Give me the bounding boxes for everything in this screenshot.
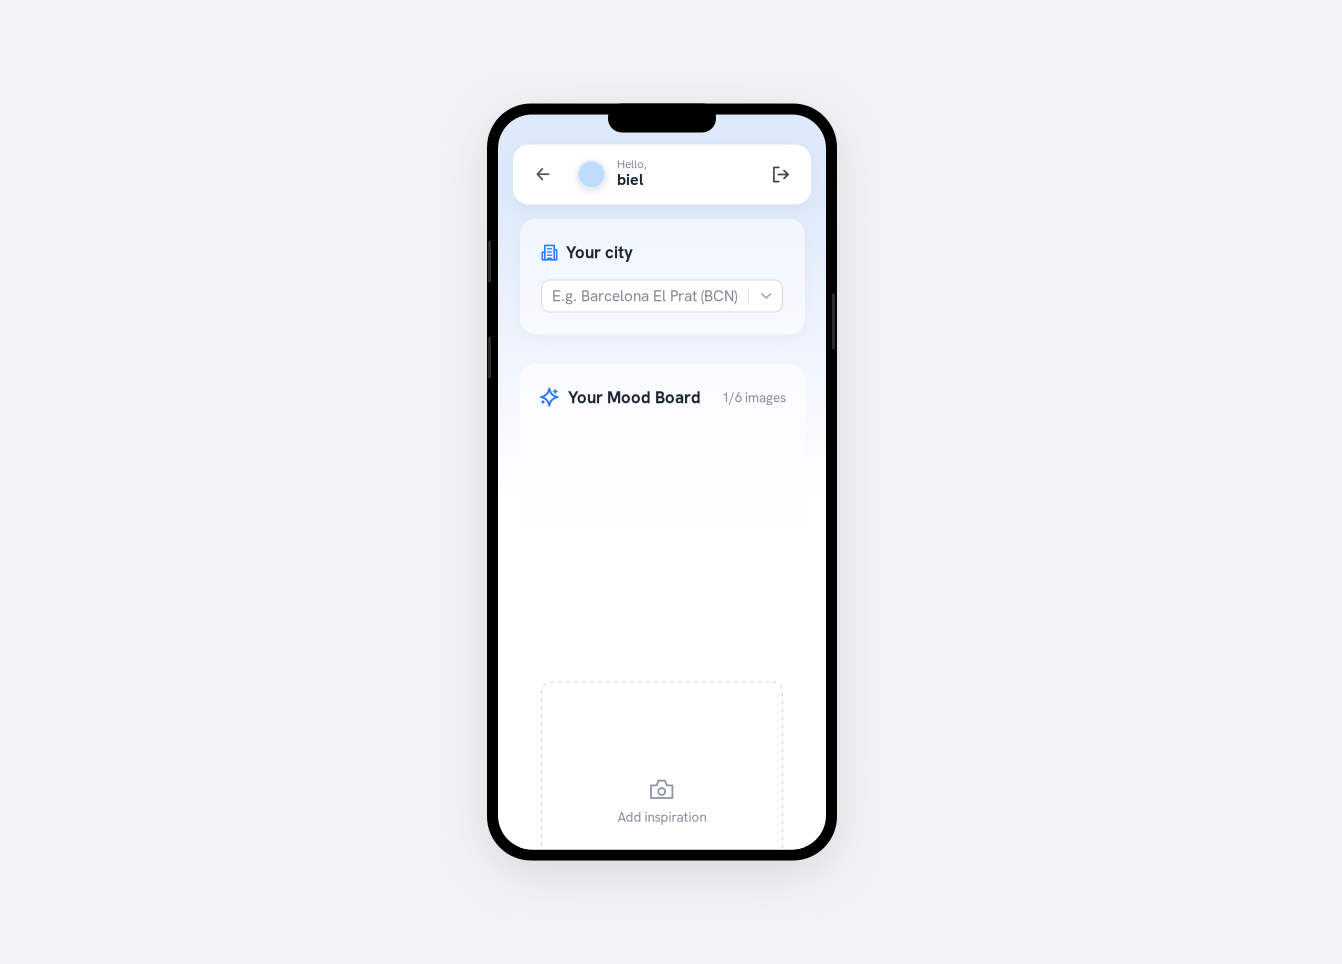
- staticText: Your Mood Board: [568, 387, 701, 408]
- button[interactable]: Log out: [763, 151, 799, 197]
- button[interactable]: Back: [525, 151, 561, 197]
- staticText: 1/6 images: [722, 389, 786, 406]
- staticText: biel: [617, 169, 643, 190]
- staticText: Add inspiration: [617, 808, 706, 826]
- button[interactable]: Add inspiration: [541, 681, 783, 861]
- button[interactable]: E.g. Barcelona El Prat (BCN): [541, 279, 783, 312]
- staticText: E.g. Barcelona El Prat (BCN): [552, 286, 737, 306]
- staticText: Hello,: [617, 156, 647, 172]
- staticText: Your city: [566, 242, 633, 263]
